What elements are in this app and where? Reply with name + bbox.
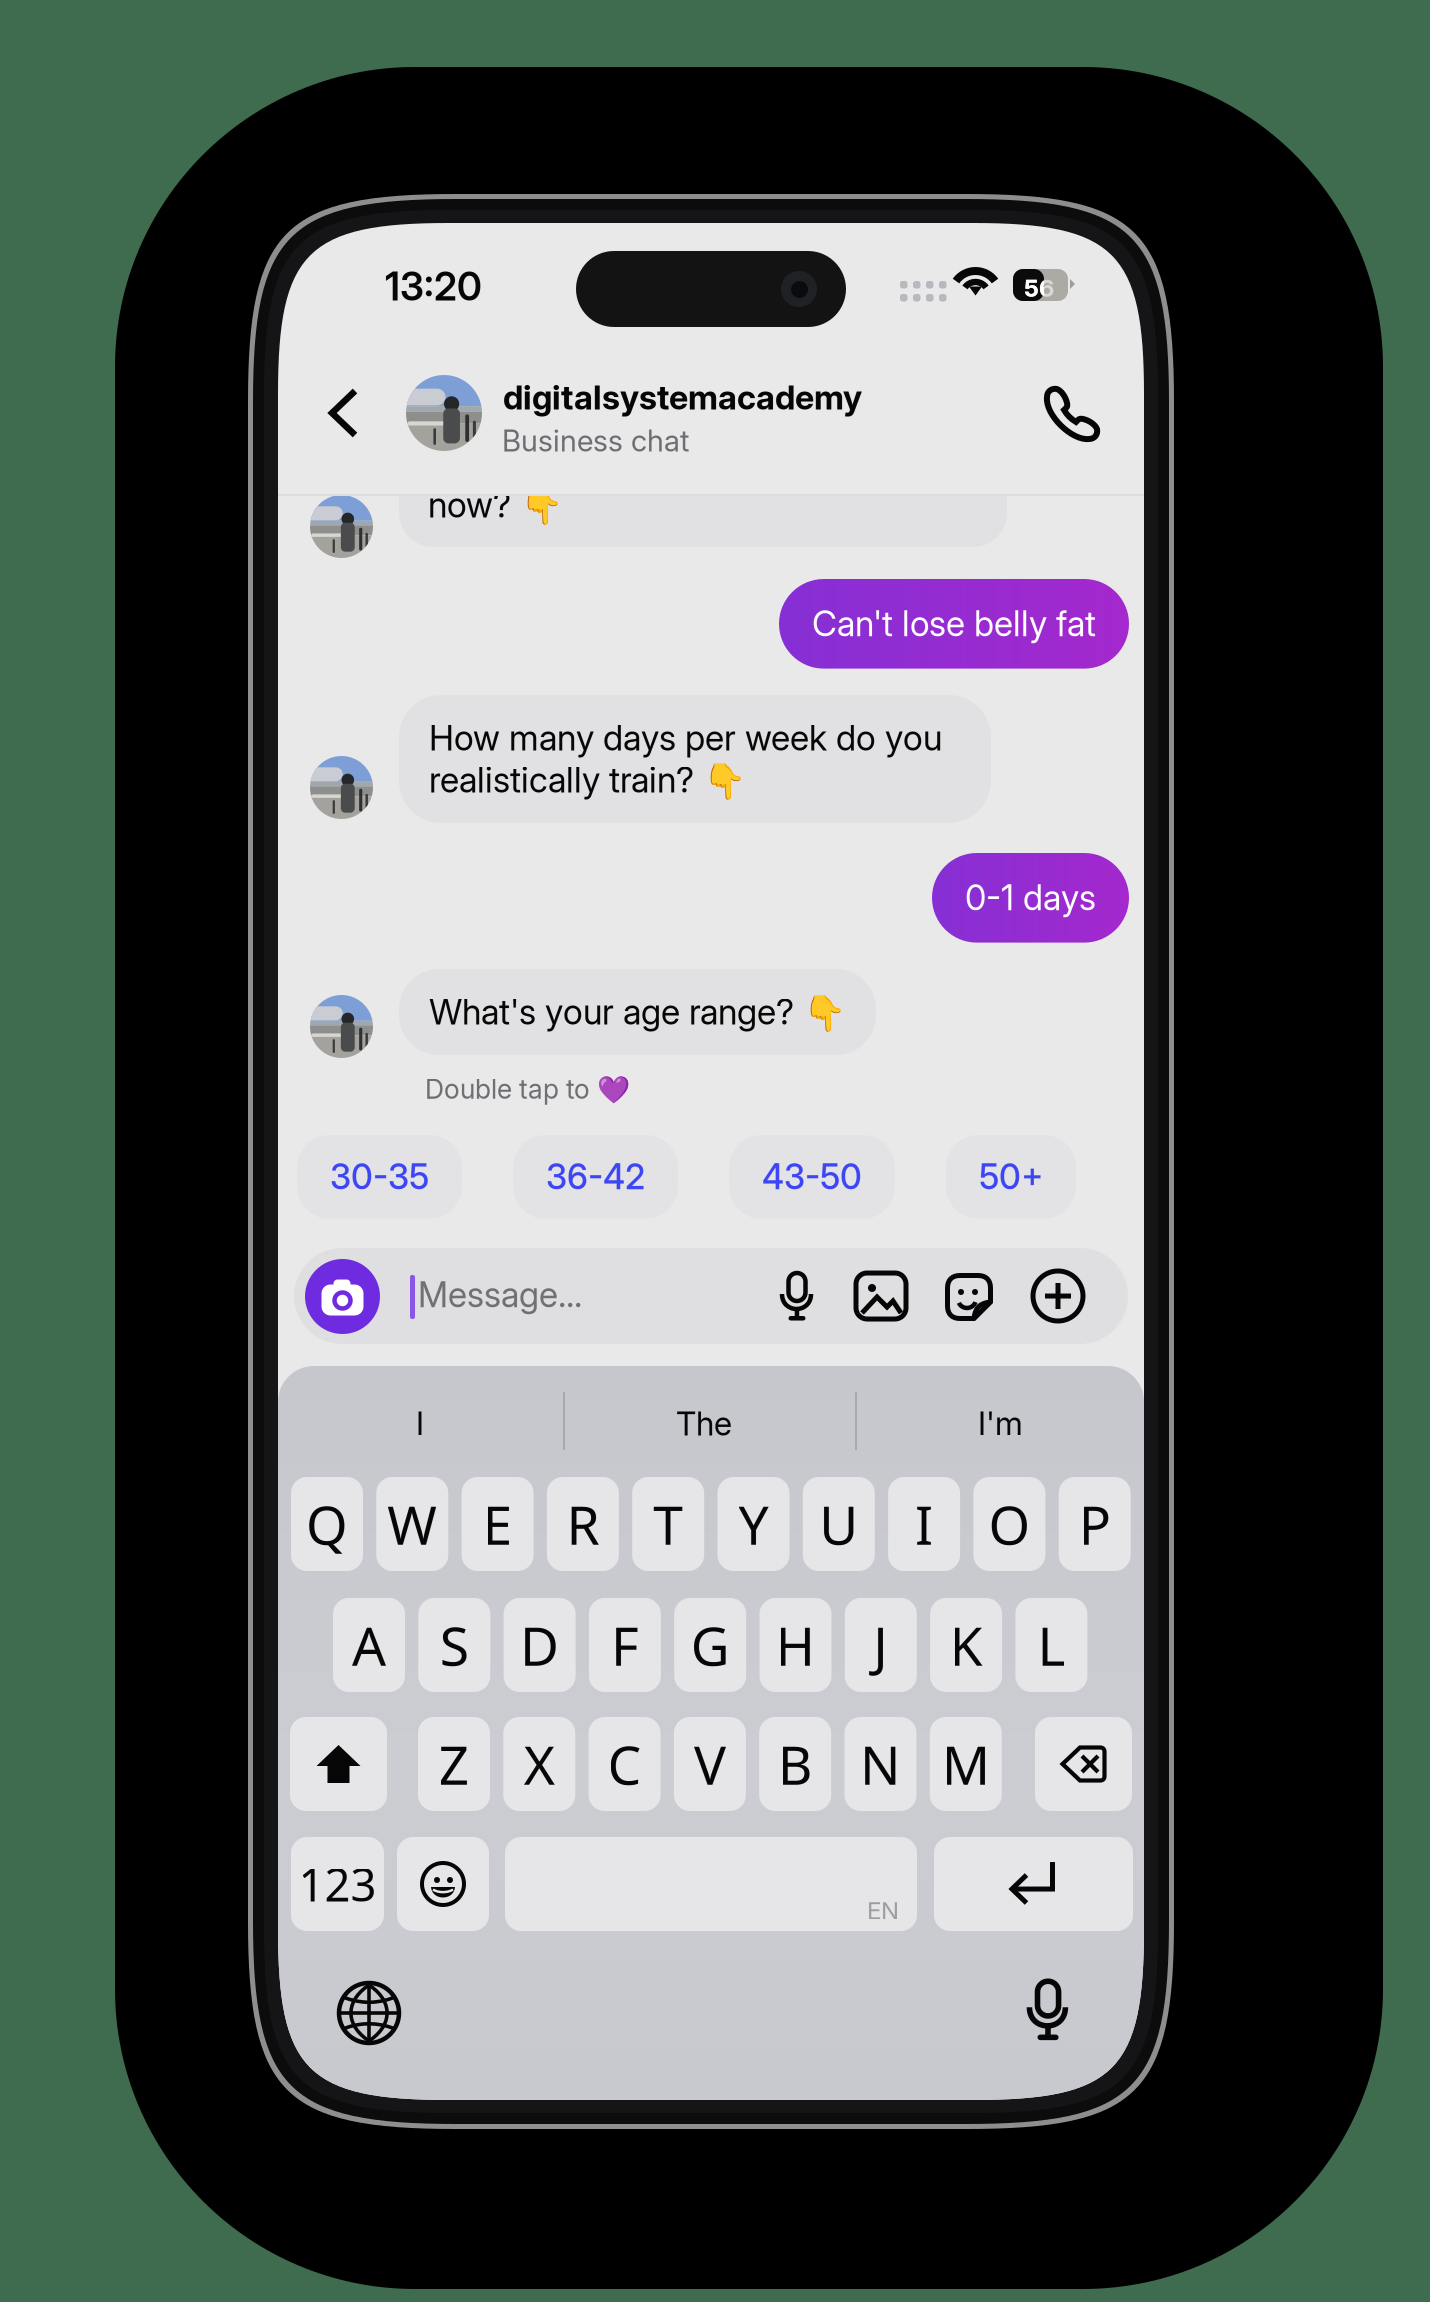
staticText: Can't lose belly fat <box>812 603 1096 645</box>
staticText: A <box>352 1610 386 1680</box>
button[interactable]: N <box>844 1717 916 1811</box>
staticText: I <box>416 1404 424 1443</box>
button[interactable]: Delete <box>1035 1717 1132 1811</box>
button[interactable]: Space <box>505 1837 917 1931</box>
staticText: T <box>653 1489 683 1559</box>
staticText: B <box>778 1729 813 1799</box>
staticText: How many days per week do you realistica… <box>429 717 942 801</box>
staticText: Q <box>306 1489 348 1559</box>
button[interactable]: U <box>803 1477 875 1571</box>
staticText: X <box>524 1729 555 1799</box>
staticText: EN <box>867 1896 899 1925</box>
button[interactable]: Dictate <box>1022 1980 1074 2042</box>
button[interactable]: S <box>418 1598 490 1692</box>
button[interactable]: Photos <box>856 1273 906 1319</box>
staticText: 36-42 <box>546 1156 645 1198</box>
button[interactable]: Camera <box>305 1259 380 1334</box>
staticText: C <box>608 1729 642 1799</box>
button[interactable]: H <box>759 1598 831 1692</box>
staticText: V <box>694 1729 726 1799</box>
button[interactable]: F <box>589 1598 661 1692</box>
button[interactable]: E <box>462 1477 534 1571</box>
staticText: 0-1 days <box>965 877 1096 919</box>
staticText: D <box>520 1610 559 1680</box>
staticText: K <box>950 1610 983 1680</box>
staticText: E <box>483 1489 513 1559</box>
button[interactable]: O <box>973 1477 1045 1571</box>
staticText: Business chat <box>502 423 689 458</box>
button[interactable]: Shift <box>290 1717 387 1811</box>
button[interactable]: K <box>930 1598 1002 1692</box>
staticText: I <box>915 1489 933 1559</box>
staticText: The <box>676 1404 732 1443</box>
button[interactable]: C <box>589 1717 661 1811</box>
staticText: Double tap to 💜 <box>425 1073 630 1105</box>
button[interactable]: 36-42 <box>513 1135 678 1219</box>
button[interactable]: J <box>845 1598 917 1692</box>
staticText: 13:20 <box>385 263 482 310</box>
staticText: R <box>566 1489 599 1559</box>
staticText: Z <box>438 1729 469 1799</box>
button[interactable]: T <box>632 1477 704 1571</box>
staticText: W <box>387 1489 437 1559</box>
button[interactable]: More <box>1033 1271 1083 1321</box>
staticText: now? 👇 <box>428 484 563 526</box>
staticText: 56 <box>1024 273 1054 302</box>
staticText: M <box>942 1729 990 1799</box>
button[interactable]: Voice message <box>776 1272 818 1322</box>
staticText: Y <box>738 1489 768 1559</box>
button[interactable]: 43-50 <box>729 1135 895 1219</box>
button[interactable]: 123 <box>291 1837 384 1931</box>
button[interactable]: Q <box>291 1477 363 1571</box>
button[interactable]: Stickers <box>945 1273 993 1321</box>
staticText: I'm <box>978 1404 1023 1443</box>
staticText: Message... <box>418 1274 582 1316</box>
button[interactable]: V <box>674 1717 746 1811</box>
staticText: digitalsystemacademy <box>503 377 862 417</box>
staticText: O <box>988 1489 1030 1559</box>
button[interactable]: X <box>503 1717 575 1811</box>
staticText: G <box>691 1610 730 1680</box>
button[interactable]: 30-35 <box>297 1135 462 1219</box>
button[interactable]: Emoji <box>397 1837 489 1931</box>
staticText: U <box>819 1489 858 1559</box>
button[interactable]: P <box>1059 1477 1131 1571</box>
staticText: 123 <box>298 1854 376 1914</box>
button[interactable]: D <box>504 1598 576 1692</box>
staticText: N <box>860 1729 901 1799</box>
button[interactable]: Y <box>717 1477 789 1571</box>
staticText: 43-50 <box>762 1156 862 1198</box>
staticText: L <box>1037 1610 1065 1680</box>
button[interactable]: M <box>930 1717 1002 1811</box>
button[interactable]: Switch keyboard <box>339 1983 399 2043</box>
staticText: P <box>1079 1489 1111 1559</box>
staticText: 50+ <box>979 1156 1043 1198</box>
button[interactable]: A <box>333 1598 405 1692</box>
button[interactable]: Back <box>325 385 365 441</box>
staticText: S <box>440 1610 469 1680</box>
button[interactable]: G <box>674 1598 746 1692</box>
button[interactable]: L <box>1015 1598 1087 1692</box>
button[interactable]: 50+ <box>946 1135 1076 1219</box>
staticText: H <box>775 1610 815 1680</box>
button[interactable]: R <box>547 1477 619 1571</box>
staticText: 30-35 <box>330 1156 429 1198</box>
button[interactable]: I <box>888 1477 960 1571</box>
button[interactable]: B <box>759 1717 831 1811</box>
button[interactable]: Call <box>1046 387 1098 441</box>
staticText: J <box>873 1610 888 1680</box>
staticText: F <box>611 1610 639 1680</box>
staticText: What's your age range? 👇 <box>429 991 846 1033</box>
button[interactable]: W <box>376 1477 448 1571</box>
staticText: 56 <box>1024 273 1054 302</box>
button[interactable]: Z <box>418 1717 490 1811</box>
button[interactable]: Return <box>934 1837 1133 1931</box>
